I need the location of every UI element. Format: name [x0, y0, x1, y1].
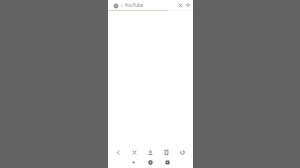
- button[interactable]: Home: [144, 156, 156, 168]
- button[interactable]: Stop loading: [129, 147, 140, 158]
- staticText: ‹ YouTube: [121, 2, 176, 8]
- button[interactable]: Back: [113, 147, 124, 158]
- button[interactable]: Reload: [177, 147, 188, 158]
- button[interactable]: Download: [145, 147, 156, 158]
- button[interactable]: Recent apps: [161, 156, 173, 168]
- button[interactable]: Close: [176, 1, 184, 9]
- button[interactable]: Tabs: [161, 147, 172, 158]
- button[interactable]: Back: [127, 156, 139, 168]
- button[interactable]: Site information: [112, 2, 119, 9]
- button[interactable]: Settings: [184, 1, 192, 9]
